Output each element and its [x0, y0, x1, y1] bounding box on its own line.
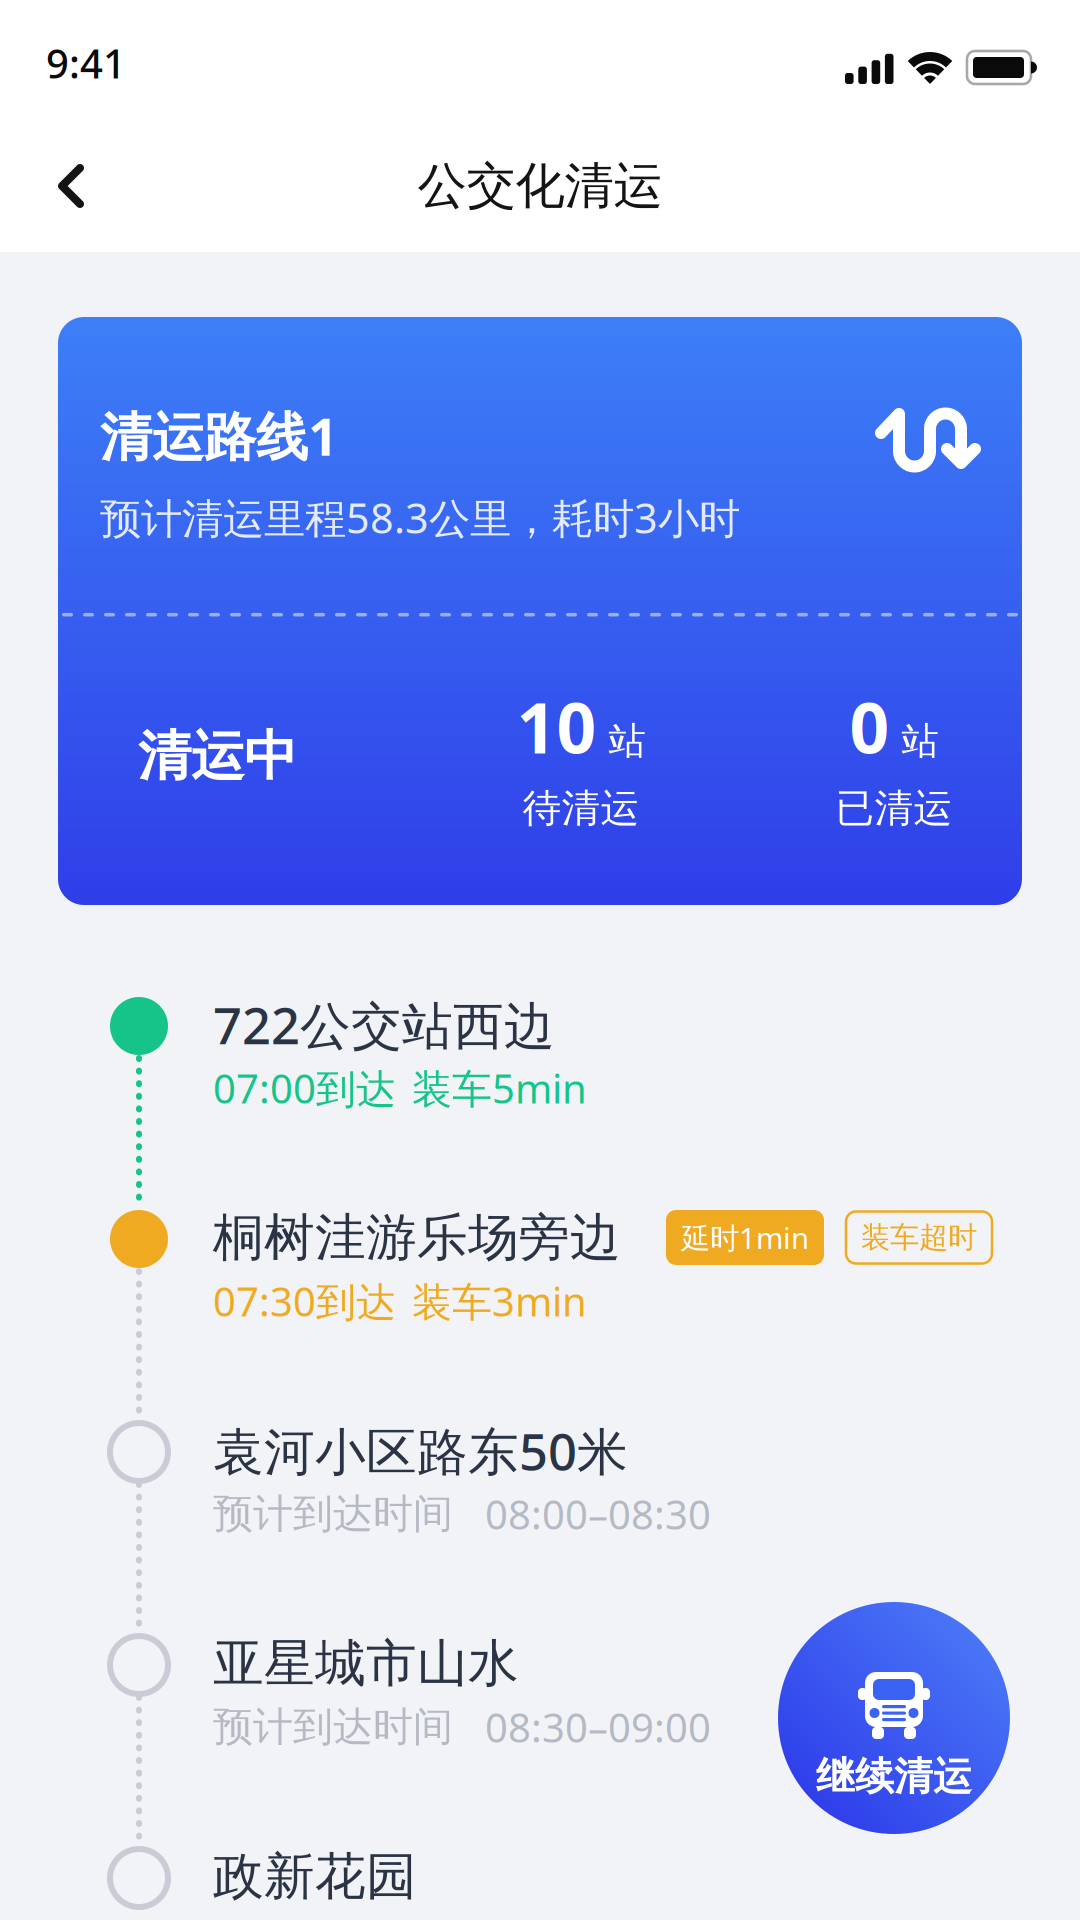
staticText: 继续清运 [816, 1753, 972, 1800]
staticText: 已清运 [835, 784, 952, 832]
staticText: 装车5min [412, 1061, 587, 1114]
staticText: 袁河小区路东50米 [213, 1417, 628, 1484]
button[interactable]: 延时1min [666, 1210, 824, 1265]
staticText: 站 [901, 718, 938, 764]
staticText: 装车超时 [861, 1219, 977, 1255]
staticText: 桐树洼游乐场旁边 [213, 1206, 621, 1269]
staticText: 722公交站西边 [213, 991, 555, 1058]
button[interactable]: 桐树洼游乐场旁边 [213, 1210, 992, 1423]
staticText: 0 [849, 680, 889, 772]
staticText: 预计到达时间 [213, 1702, 453, 1751]
staticText: 延时1min [681, 1218, 809, 1257]
staticText: 预计到达时间 [213, 1489, 453, 1538]
button[interactable]: 722公交站西边 [213, 997, 624, 1210]
staticText: 亚星城市山水 [213, 1632, 519, 1695]
staticText: 政新花园 [213, 1845, 417, 1908]
staticText: 08:00–08:30 [485, 1487, 711, 1540]
staticText: 08:30–09:00 [485, 1700, 711, 1753]
staticText: 9:41 [46, 36, 126, 89]
staticText: 10 [516, 680, 596, 772]
staticText: 待清运 [522, 784, 639, 832]
staticText: 清运中 [138, 723, 297, 789]
staticText: 装车3min [412, 1274, 587, 1327]
button[interactable]: 返回 [0, 130, 142, 242]
button[interactable]: 装车超时 [846, 1211, 992, 1263]
staticText: 预计清运里程58.3公里，耗时3小时 [100, 490, 740, 545]
button[interactable]: 亚星城市山水 [213, 1636, 711, 1849]
button[interactable]: 袁河小区路东50米 [213, 1423, 711, 1636]
staticText: 07:00到达 [213, 1061, 396, 1114]
button[interactable]: 政新花园 [213, 1849, 711, 1920]
staticText: 站 [608, 718, 645, 764]
button[interactable]: 继续清运 [778, 1602, 1010, 1834]
staticText: 公交化清运 [417, 156, 662, 216]
staticText: 清运路线1 [100, 401, 338, 470]
staticText: 07:30到达 [213, 1274, 396, 1327]
